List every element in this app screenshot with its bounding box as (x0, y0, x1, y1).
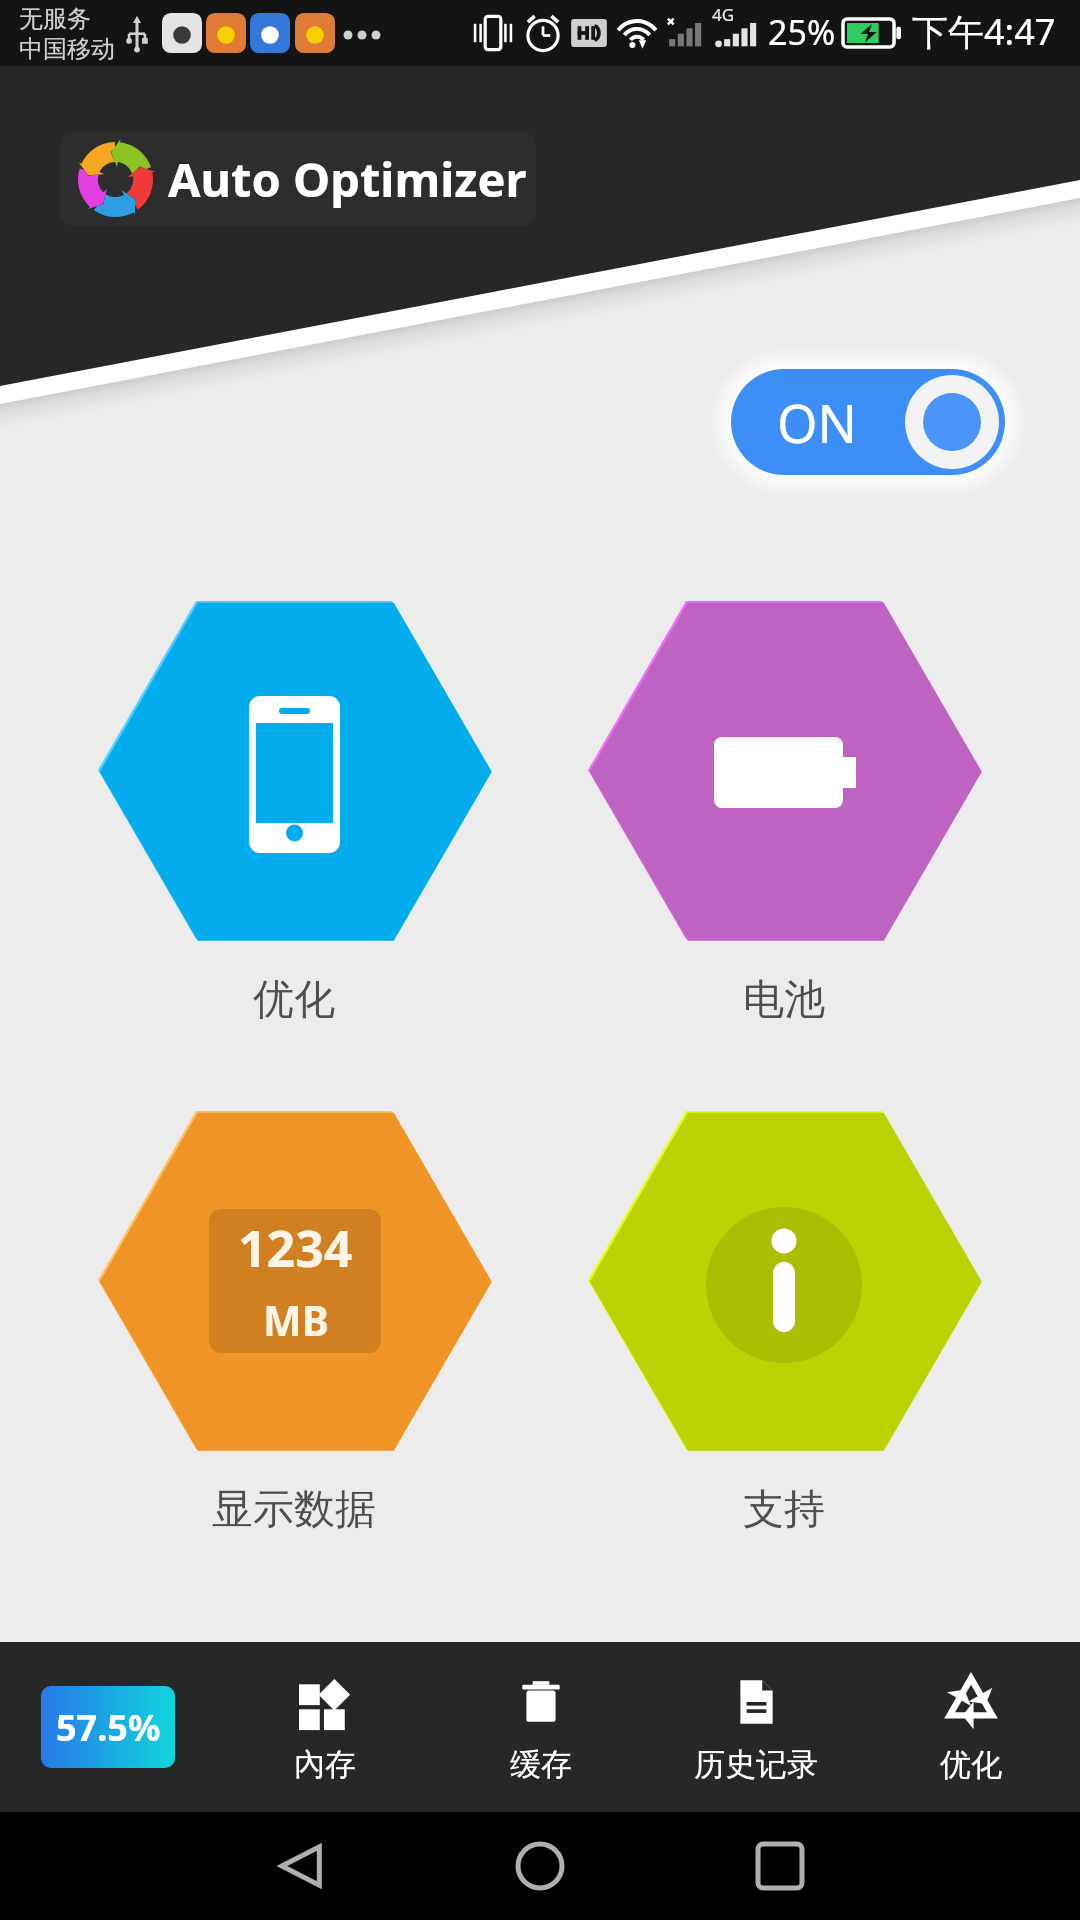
button[interactable]: 支持 (588, 1111, 980, 1541)
button[interactable]: 历史记录 (666, 1676, 846, 1784)
staticText: 25% (768, 9, 836, 55)
staticText: Auto Optimizer (168, 147, 527, 211)
staticText: 优化 (253, 974, 335, 1026)
button[interactable]: 电池 (588, 601, 980, 1031)
staticText: 无服务 (19, 4, 91, 34)
button[interactable]: Auto optimize toggle, on (731, 369, 1005, 475)
button[interactable]: 缓存 (451, 1676, 631, 1784)
staticText: 历史记录 (694, 1745, 818, 1784)
staticText: 內存 (294, 1745, 356, 1784)
button[interactable]: 57.5% (41, 1686, 175, 1768)
staticText: 缓存 (510, 1745, 572, 1784)
button[interactable]: Auto Optimizer (60, 132, 536, 226)
button[interactable]: 內存 (235, 1676, 415, 1784)
staticText: 1234 (238, 1214, 353, 1282)
staticText: 支持 (743, 1484, 825, 1536)
button[interactable]: Home (495, 1821, 585, 1911)
staticText: 中国移动 (19, 34, 115, 64)
staticText: ON (777, 387, 858, 458)
staticText: 57.5% (56, 1703, 161, 1752)
button[interactable]: 优化 (98, 601, 490, 1031)
button[interactable]: 显示数据 (98, 1111, 490, 1541)
staticText: 4G (712, 3, 735, 26)
staticText: 下午4:47 (912, 7, 1056, 56)
button[interactable]: Back (258, 1821, 348, 1911)
staticText: 电池 (743, 974, 825, 1026)
staticText: 优化 (940, 1745, 1002, 1784)
button[interactable]: 优化 (881, 1676, 1061, 1784)
staticText: MB (263, 1292, 329, 1348)
staticText: 显示数据 (212, 1484, 376, 1536)
button[interactable]: Recents (735, 1821, 825, 1911)
